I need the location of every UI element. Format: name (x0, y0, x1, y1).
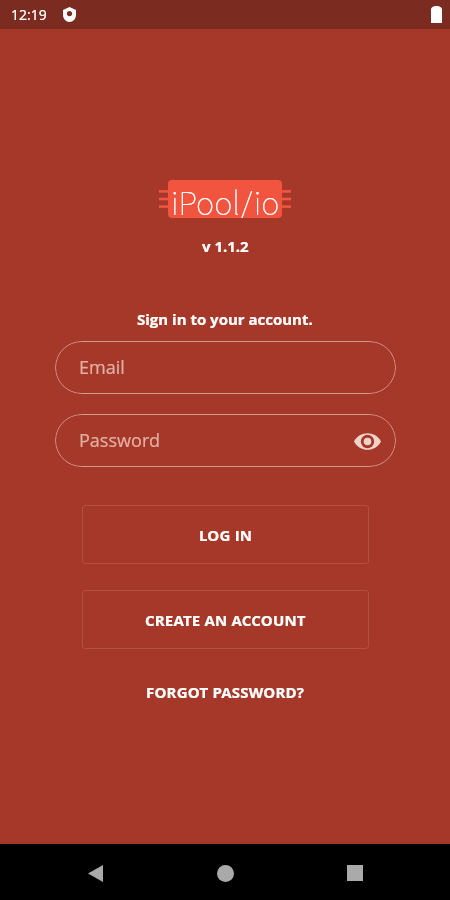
staticText: Sign in to your account. (137, 309, 313, 329)
staticText: Email (79, 355, 125, 380)
staticText: LOG IN (199, 525, 253, 545)
staticText: iPool/io (171, 180, 280, 218)
button[interactable]: Recent apps (333, 851, 377, 895)
button[interactable]: Show password (352, 426, 382, 456)
button[interactable]: Back (73, 851, 117, 895)
button[interactable]: Password (55, 414, 396, 467)
staticText: Password (79, 428, 160, 453)
staticText: 12:19 (11, 5, 47, 24)
button[interactable]: CREATE AN ACCOUNT (82, 590, 369, 649)
button[interactable]: FORGOT PASSWORD? (134, 676, 317, 708)
button[interactable]: LOG IN (82, 505, 369, 564)
staticText: v 1.1.2 (202, 236, 249, 256)
staticText: CREATE AN ACCOUNT (145, 610, 306, 630)
staticText: FORGOT PASSWORD? (146, 682, 305, 702)
button[interactable]: Home (203, 851, 247, 895)
button[interactable]: Email (55, 341, 396, 394)
